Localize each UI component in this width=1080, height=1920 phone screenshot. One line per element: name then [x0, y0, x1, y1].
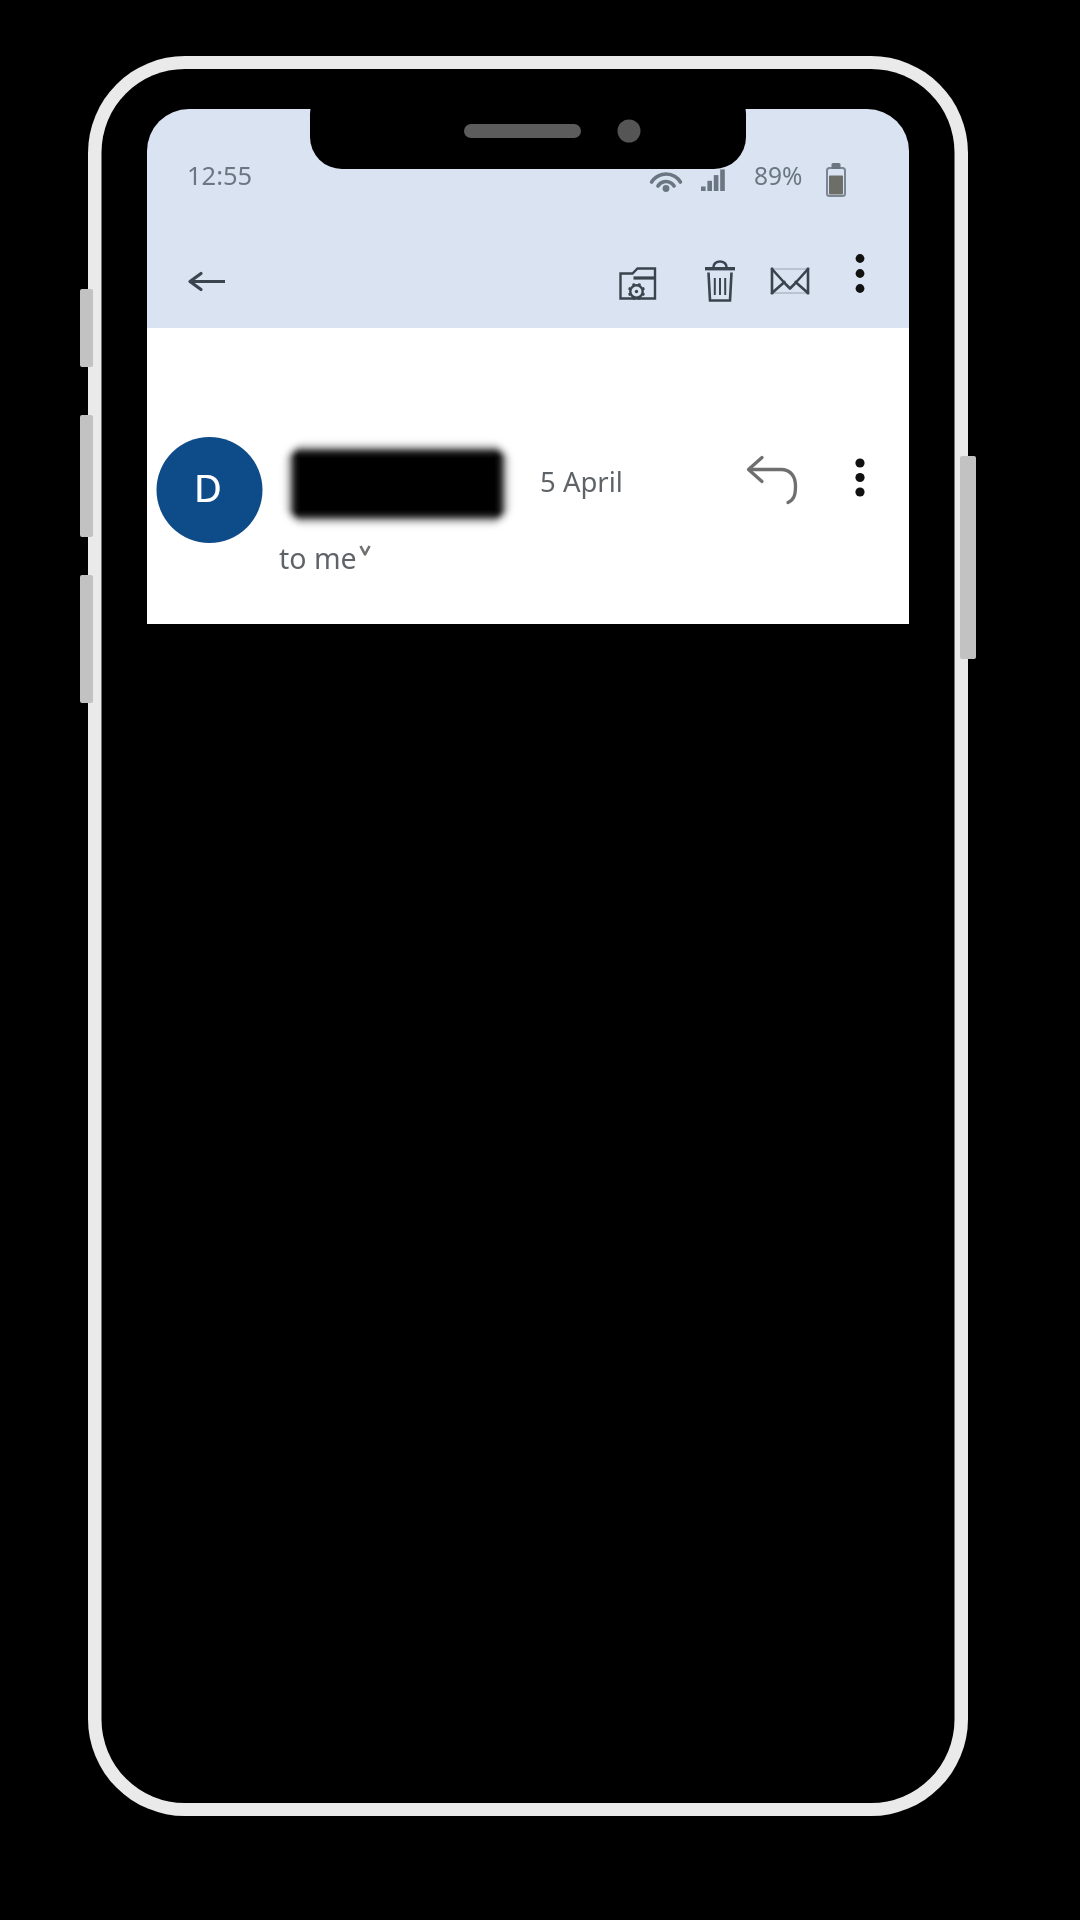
staticText: D — [194, 461, 222, 513]
staticText: 89% — [754, 159, 803, 192]
staticText: 12:55 — [187, 158, 253, 193]
button[interactable]: Back — [172, 245, 244, 317]
staticText: to me — [279, 539, 357, 578]
button[interactable]: More options — [824, 246, 896, 318]
button[interactable]: to me — [276, 536, 376, 576]
staticText: 5 April — [540, 463, 623, 500]
button[interactable]: Delete — [684, 246, 756, 318]
button[interactable]: Sender avatar — [157, 437, 263, 543]
button[interactable]: Move to — [602, 246, 674, 318]
button[interactable]: Reply — [740, 446, 808, 514]
button[interactable]: More options for this message — [826, 444, 894, 512]
button[interactable]: Mark as unread — [754, 246, 826, 318]
